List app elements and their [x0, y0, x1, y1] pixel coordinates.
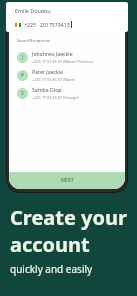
staticText: Peter Jaeckle: [32, 68, 64, 75]
staticText: +225 77 03 45 67 (Orange): [32, 95, 79, 100]
staticText: +225: [24, 21, 36, 28]
staticText: P: [21, 72, 25, 79]
staticText: Saved Recipients: [17, 38, 50, 44]
button[interactable]: P: [9, 66, 125, 84]
staticText: J: [22, 54, 24, 61]
staticText: +225 77 03 45 67 (Wave) / Proximo: [32, 59, 94, 64]
staticText: S: [21, 90, 24, 97]
button[interactable]: NEXT: [9, 172, 125, 189]
staticText: Johannes Jaeckle: [32, 50, 73, 57]
staticText: Emile Doudou: [15, 7, 51, 14]
staticText: Create your: [10, 204, 127, 231]
staticText: +225 77 03 45 67 (Wave): [32, 77, 75, 82]
staticText: quickly and easily: [10, 262, 93, 276]
staticText: account: [10, 231, 90, 258]
staticText: 2017579413: [40, 21, 70, 28]
button[interactable]: +225: [10, 18, 124, 31]
button[interactable]: S: [9, 84, 125, 102]
button[interactable]: J: [9, 48, 125, 66]
staticText: Samba Diop: [32, 86, 62, 93]
staticText: NEXT: [61, 177, 74, 184]
